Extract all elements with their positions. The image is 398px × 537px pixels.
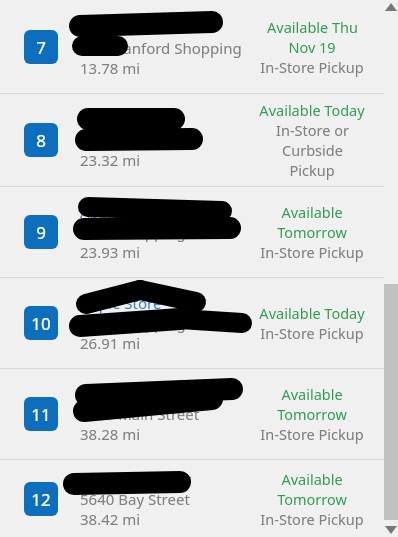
staticText: 12 (31, 488, 51, 511)
staticText: Apple Store (80, 293, 162, 313)
staticText: 13.78 mi (80, 58, 141, 78)
staticText: In-Store Pickup (260, 509, 364, 529)
staticText: 38.28 mi (80, 424, 141, 444)
staticText: 26.91 mi (80, 333, 141, 353)
staticText: 870 Stanford Shopping (80, 38, 242, 58)
staticText: 9876 Shopping Ave (80, 313, 216, 333)
staticText: Curbside (282, 140, 343, 160)
staticText: In-Store or (276, 120, 349, 140)
button[interactable]: Scroll up (384, 0, 398, 14)
staticText: Available Today (259, 100, 365, 120)
button[interactable]: Scroll down (384, 523, 398, 537)
staticText: In-Store Pickup (260, 57, 364, 77)
staticText: Center (80, 16, 131, 38)
staticText: 5640 Bay Street (80, 489, 190, 509)
staticText: 4321 Main Street (80, 404, 200, 424)
staticText: Nov 19 (288, 37, 336, 57)
staticText: Apple Store Bay (80, 469, 192, 489)
staticText: 8 (36, 129, 46, 152)
staticText: 38.42 mi (80, 509, 141, 529)
staticText: Pickup (289, 160, 335, 180)
staticText: 9 (36, 221, 46, 244)
staticText: Shopping Center (80, 130, 199, 150)
staticText: 23.32 mi (80, 150, 141, 170)
staticText: Tomorrow (277, 222, 347, 242)
staticText: Available Today (259, 303, 365, 323)
staticText: In-Store Pickup (260, 323, 364, 343)
button[interactable]: 11 (0, 369, 398, 459)
staticText: Available (281, 202, 343, 222)
button[interactable]: 10 (0, 278, 398, 368)
staticText: Tomorrow (277, 404, 347, 424)
staticText: Tomorrow (277, 489, 347, 509)
staticText: In-Store Pickup (260, 242, 364, 262)
staticText: Apple Store Mall (80, 202, 196, 222)
staticText: Apple Store Place (80, 384, 203, 404)
staticText: Available (281, 469, 343, 489)
staticText: 7 (36, 36, 46, 59)
button[interactable]: 8 (0, 94, 398, 186)
staticText: Available (281, 384, 343, 404)
staticText: 1234 Shopping Street (80, 222, 232, 242)
staticText: Available Thu (267, 17, 358, 37)
other: Scroll bar (384, 0, 398, 537)
button[interactable]: 12 (0, 460, 398, 537)
staticText: Apple Store (80, 110, 162, 130)
staticText: 11 (31, 403, 51, 426)
staticText: 23.93 mi (80, 242, 141, 262)
staticText: In-Store Pickup (260, 424, 364, 444)
staticText: 10 (31, 312, 51, 335)
button[interactable]: 7 (0, 0, 398, 93)
button[interactable]: 9 (0, 187, 398, 277)
